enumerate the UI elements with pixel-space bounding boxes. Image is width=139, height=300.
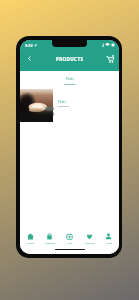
- button[interactable]: Favorite: [80, 233, 99, 244]
- button[interactable]: More: [99, 233, 118, 244]
- button[interactable]: Fish: [20, 89, 119, 122]
- staticText: Fish: [66, 76, 74, 81]
- staticText: More: [106, 241, 112, 244]
- staticText: Favorite: [85, 241, 95, 244]
- button[interactable]: Back: [23, 52, 36, 65]
- staticText: PRODUCTS: [56, 56, 84, 62]
- button[interactable]: Products: [40, 233, 59, 244]
- staticText: Ads: [67, 241, 72, 244]
- button[interactable]: Ads: [60, 233, 79, 244]
- button[interactable]: Fish: [64, 76, 75, 85]
- staticText: Home: [27, 241, 34, 244]
- staticText: Products: [45, 241, 55, 244]
- button[interactable]: Shopping cart: [103, 52, 116, 65]
- staticText: Fish: [58, 99, 66, 104]
- staticText: 9:32: [25, 43, 33, 48]
- button[interactable]: Home: [21, 233, 40, 244]
